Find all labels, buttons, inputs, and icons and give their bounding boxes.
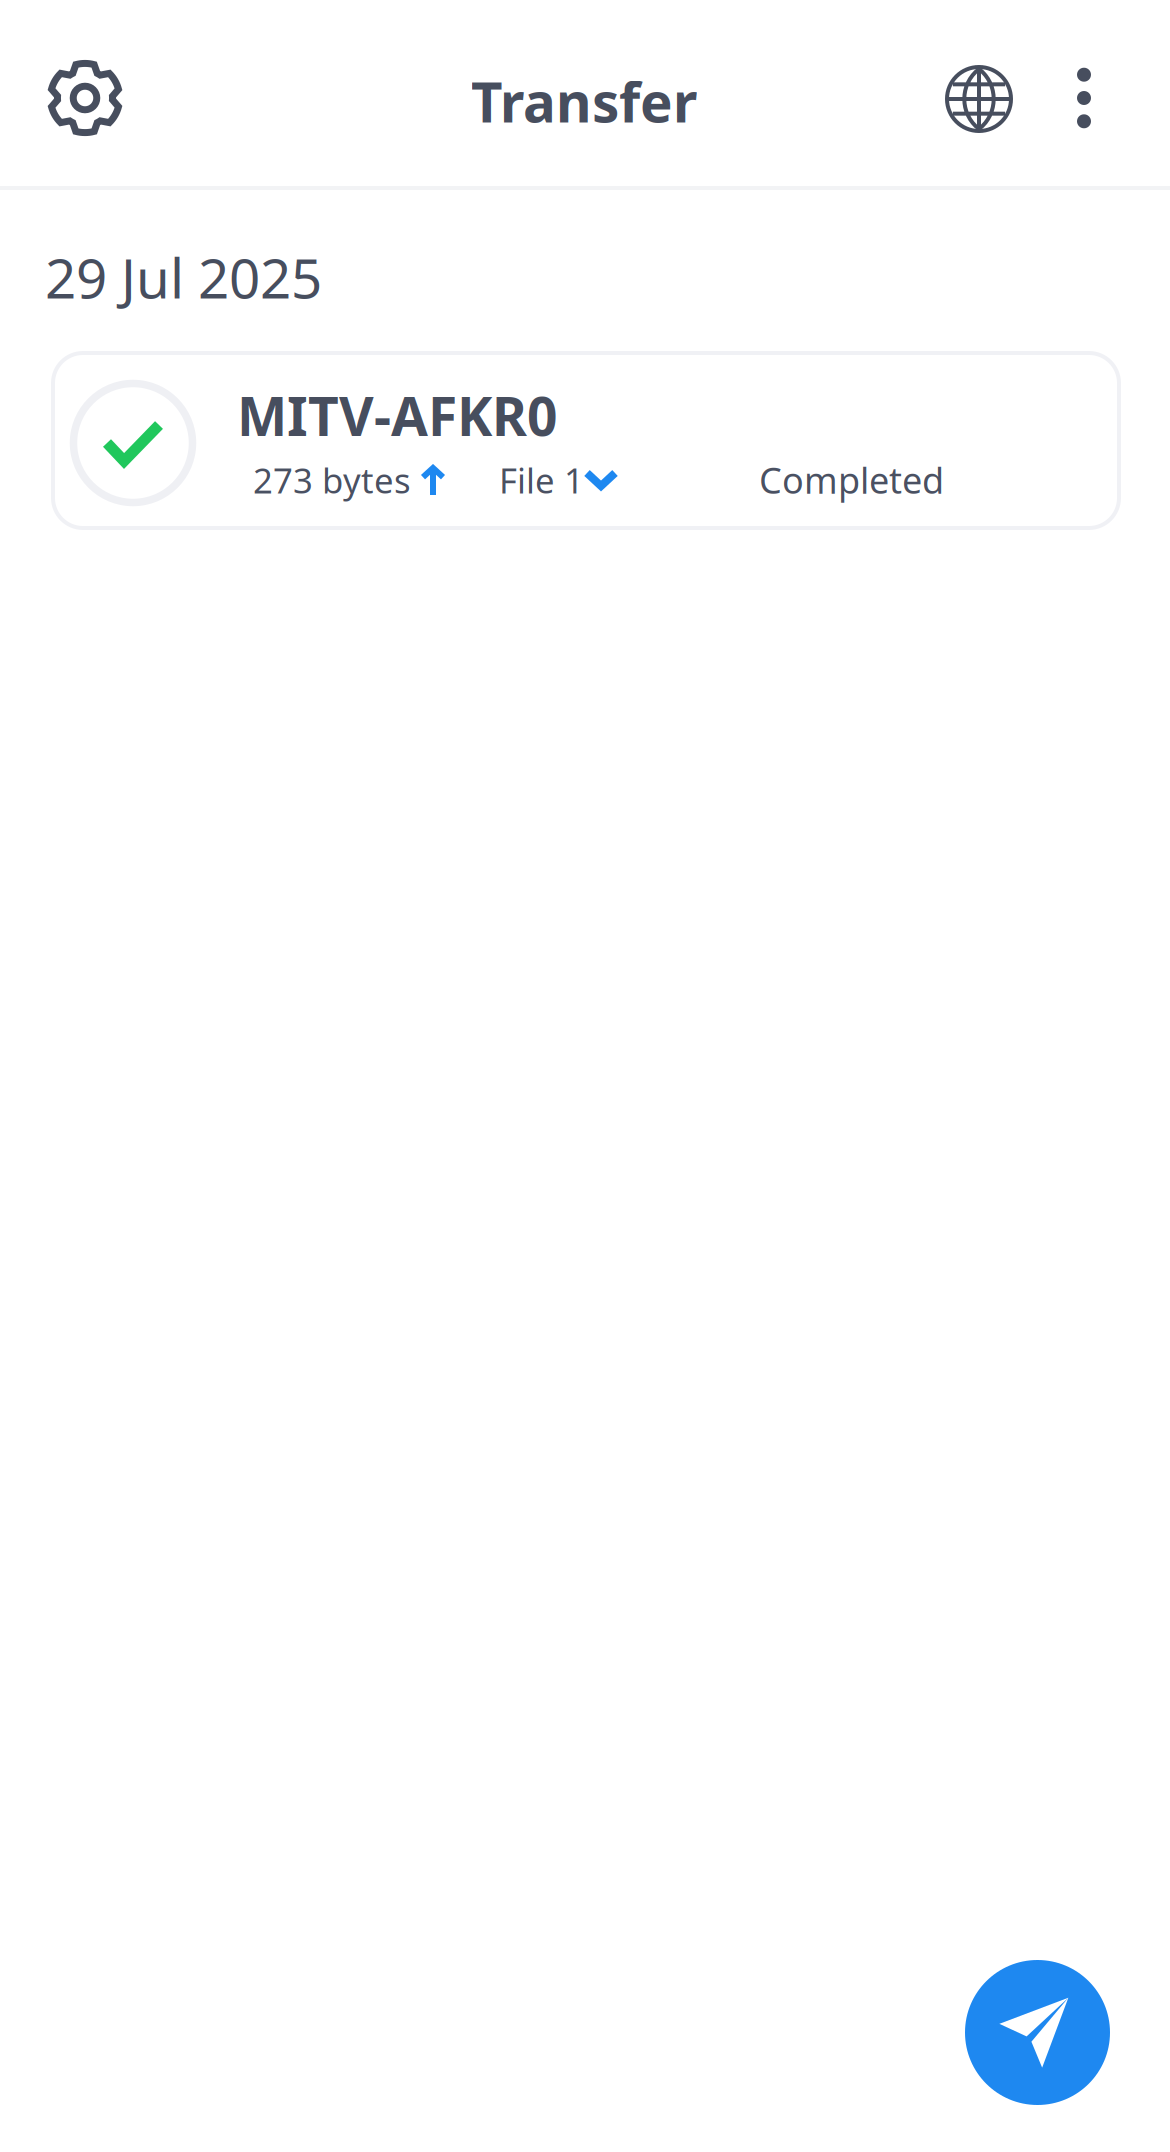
button[interactable]: More options: [1039, 43, 1129, 153]
staticText: File 1: [499, 457, 584, 503]
staticText: Transfer: [471, 65, 697, 138]
button[interactable]: Settings: [25, 38, 145, 158]
staticText: 29 Jul 2025: [45, 241, 322, 314]
staticText: 273 bytes: [253, 457, 411, 503]
button[interactable]: MITV-AFKR0: [51, 351, 1121, 530]
button[interactable]: Send: [965, 1960, 1110, 2105]
button[interactable]: Language: [924, 44, 1034, 154]
staticText: MITV-AFKR0: [237, 380, 558, 451]
staticText: Completed: [759, 456, 944, 504]
